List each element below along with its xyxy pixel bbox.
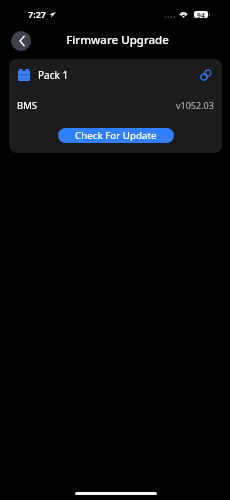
staticText: 94 xyxy=(197,11,205,18)
staticText: BMS xyxy=(17,99,38,112)
staticText: Pack 1 xyxy=(38,68,69,82)
button[interactable]: Link device xyxy=(196,67,212,83)
button[interactable]: Check For Update xyxy=(58,128,174,143)
staticText: Firmware Upgrade xyxy=(66,32,169,48)
staticText: v1052.03 xyxy=(176,99,214,111)
button[interactable]: Back xyxy=(11,31,31,51)
staticText: Check For Update xyxy=(75,129,157,142)
staticText: 7:27 xyxy=(28,8,46,20)
